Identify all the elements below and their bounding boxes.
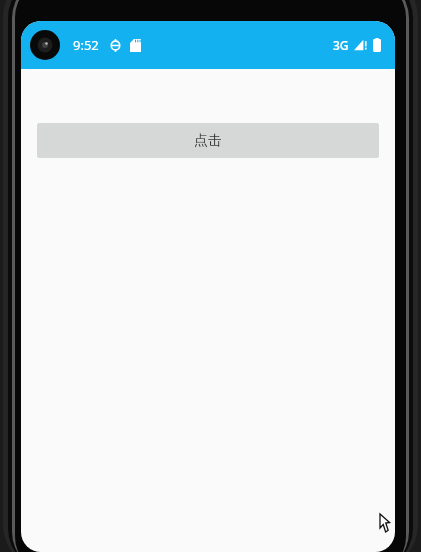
staticText: 3G bbox=[333, 37, 349, 53]
other: Battery bbox=[373, 38, 381, 52]
staticText: 9:52 bbox=[73, 36, 99, 54]
other: SD card bbox=[130, 39, 141, 52]
staticText: 点击 bbox=[194, 132, 222, 150]
other: USB debugging bbox=[110, 39, 121, 52]
button[interactable]: 点击 bbox=[37, 123, 379, 158]
other: Mobile signal bbox=[354, 39, 367, 51]
